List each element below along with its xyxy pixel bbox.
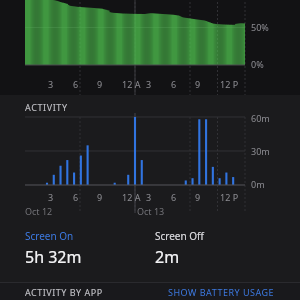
staticText: 6 xyxy=(73,78,79,90)
staticText: 3 xyxy=(48,78,54,90)
staticText: 6 xyxy=(171,191,177,203)
staticText: 12 A xyxy=(122,78,141,90)
staticText: 12 P xyxy=(220,191,239,203)
staticText: 5h 32m xyxy=(25,246,82,268)
staticText: 9 xyxy=(195,191,201,203)
staticText: 6 xyxy=(171,78,177,90)
staticText: 9 xyxy=(195,78,201,90)
staticText: 3 xyxy=(48,191,54,203)
staticText: ACTIVITY xyxy=(25,101,68,113)
staticText: 30m xyxy=(251,145,270,157)
staticText: 12 A xyxy=(122,191,141,203)
staticText: 6 xyxy=(73,191,79,203)
staticText: 3 xyxy=(146,78,152,90)
staticText: 12 P xyxy=(220,78,239,90)
staticText: SHOW BATTERY USAGE xyxy=(168,286,275,298)
staticText: 2m xyxy=(155,246,180,268)
staticText: Screen On xyxy=(25,229,74,243)
staticText: Screen Off xyxy=(155,229,204,243)
staticText: 50% xyxy=(251,21,269,33)
button[interactable]: ACTIVITY BY APP xyxy=(25,286,103,298)
staticText: Oct 13 xyxy=(137,205,165,217)
button[interactable]: SHOW BATTERY USAGE xyxy=(168,286,275,298)
staticText: 9 xyxy=(97,78,103,90)
staticText: ACTIVITY BY APP xyxy=(25,286,103,298)
staticText: 0% xyxy=(251,58,264,70)
staticText: 0m xyxy=(251,178,265,190)
staticText: 3 xyxy=(146,191,152,203)
staticText: 60m xyxy=(251,112,270,124)
staticText: 9 xyxy=(97,191,103,203)
staticText: Oct 12 xyxy=(25,205,53,217)
